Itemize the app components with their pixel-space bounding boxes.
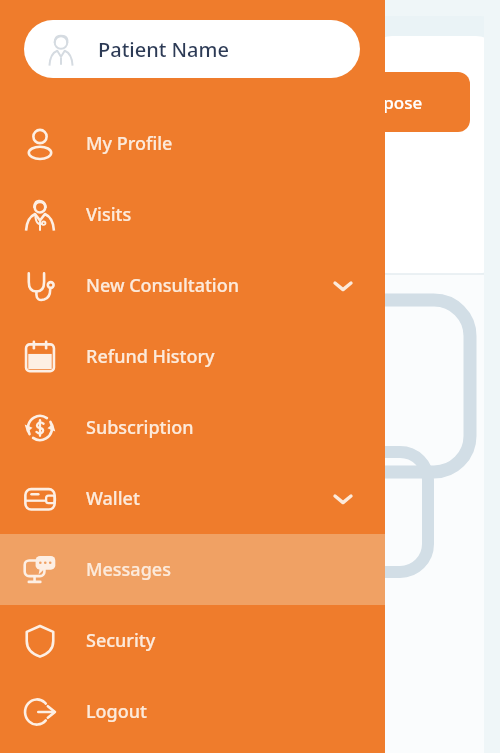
button[interactable]: Expand New Consultation xyxy=(320,263,366,309)
staticText: My Profile xyxy=(86,131,173,156)
staticText: Security xyxy=(86,628,156,653)
staticText: New Consultation xyxy=(86,273,239,298)
button[interactable]: New Consultation xyxy=(0,250,385,321)
staticText: Subscription xyxy=(86,415,194,440)
staticText: Refund History xyxy=(86,344,215,369)
button[interactable]: Compose xyxy=(298,72,470,132)
button[interactable]: My Profile xyxy=(0,108,385,179)
button[interactable]: Messages xyxy=(0,534,385,605)
button[interactable]: Visits xyxy=(0,179,385,250)
button[interactable]: Subscription xyxy=(0,392,385,463)
staticText: Visits xyxy=(86,202,132,227)
staticText: Compose xyxy=(346,91,423,114)
staticText: Messages xyxy=(86,557,171,582)
button[interactable]: Expand Wallet xyxy=(320,476,366,522)
button[interactable]: Logout xyxy=(0,676,385,747)
button[interactable]: Wallet xyxy=(0,463,385,534)
button[interactable]: Patient Name xyxy=(24,20,360,78)
staticText: Logout xyxy=(86,699,147,724)
staticText: Wallet xyxy=(86,486,140,511)
staticText: Patient Name xyxy=(98,36,229,63)
button[interactable]: Refund History xyxy=(0,321,385,392)
button[interactable]: Security xyxy=(0,605,385,676)
